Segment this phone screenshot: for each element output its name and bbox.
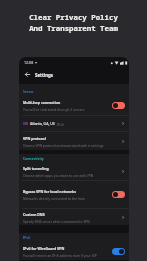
staticText: Networks directly connected to the host (23, 196, 85, 200)
button[interactable]: Toggle (112, 248, 125, 255)
staticText: IPv4 (57, 122, 64, 126)
staticText: 12:08 (24, 60, 34, 65)
staticText: Server (23, 89, 34, 93)
button[interactable]: Split tunneling (19, 163, 129, 180)
staticText: IPv6 for WireGuard VPN (23, 246, 65, 251)
staticText: Choose which apps you want to use with V… (23, 173, 94, 177)
staticText: You will receive an IPv6 address even if… (23, 253, 97, 257)
staticText: Custom DNS (23, 212, 45, 217)
staticText: Settings (35, 72, 53, 78)
staticText: Clear Privacy Policy (29, 12, 118, 22)
staticText: And Transparent Team (29, 23, 118, 33)
button[interactable]: Back (22, 69, 33, 80)
staticText: Connectivity (23, 156, 44, 160)
button[interactable]: IPv6 for WireGuard VPN (19, 242, 129, 260)
staticText: Specify DNS server when connected to VPN (23, 219, 90, 223)
button[interactable]: Toggle (112, 191, 125, 198)
button[interactable]: Custom DNS (19, 209, 129, 225)
staticText: Bypass VPN for local networks (23, 189, 76, 194)
staticText: Choose VPN protocol and associated with … (23, 143, 105, 147)
staticText: VPN protocol (23, 136, 46, 141)
button[interactable]: Bypass VPN for local networks (19, 181, 129, 208)
staticText: Split tunneling (23, 166, 49, 171)
button[interactable]: Multi-hop connection (19, 96, 129, 115)
staticText: You will be redirected through 2 servers (23, 107, 85, 111)
button[interactable]: VPN protocol (19, 132, 129, 150)
staticText: IPv6 (23, 235, 31, 239)
button[interactable]: Toggle (112, 102, 125, 109)
staticText: Atlanta, GA, US (30, 121, 55, 126)
button[interactable]: Atlanta, GA, US (19, 116, 129, 131)
staticText: Multi-hop connection (23, 100, 61, 105)
